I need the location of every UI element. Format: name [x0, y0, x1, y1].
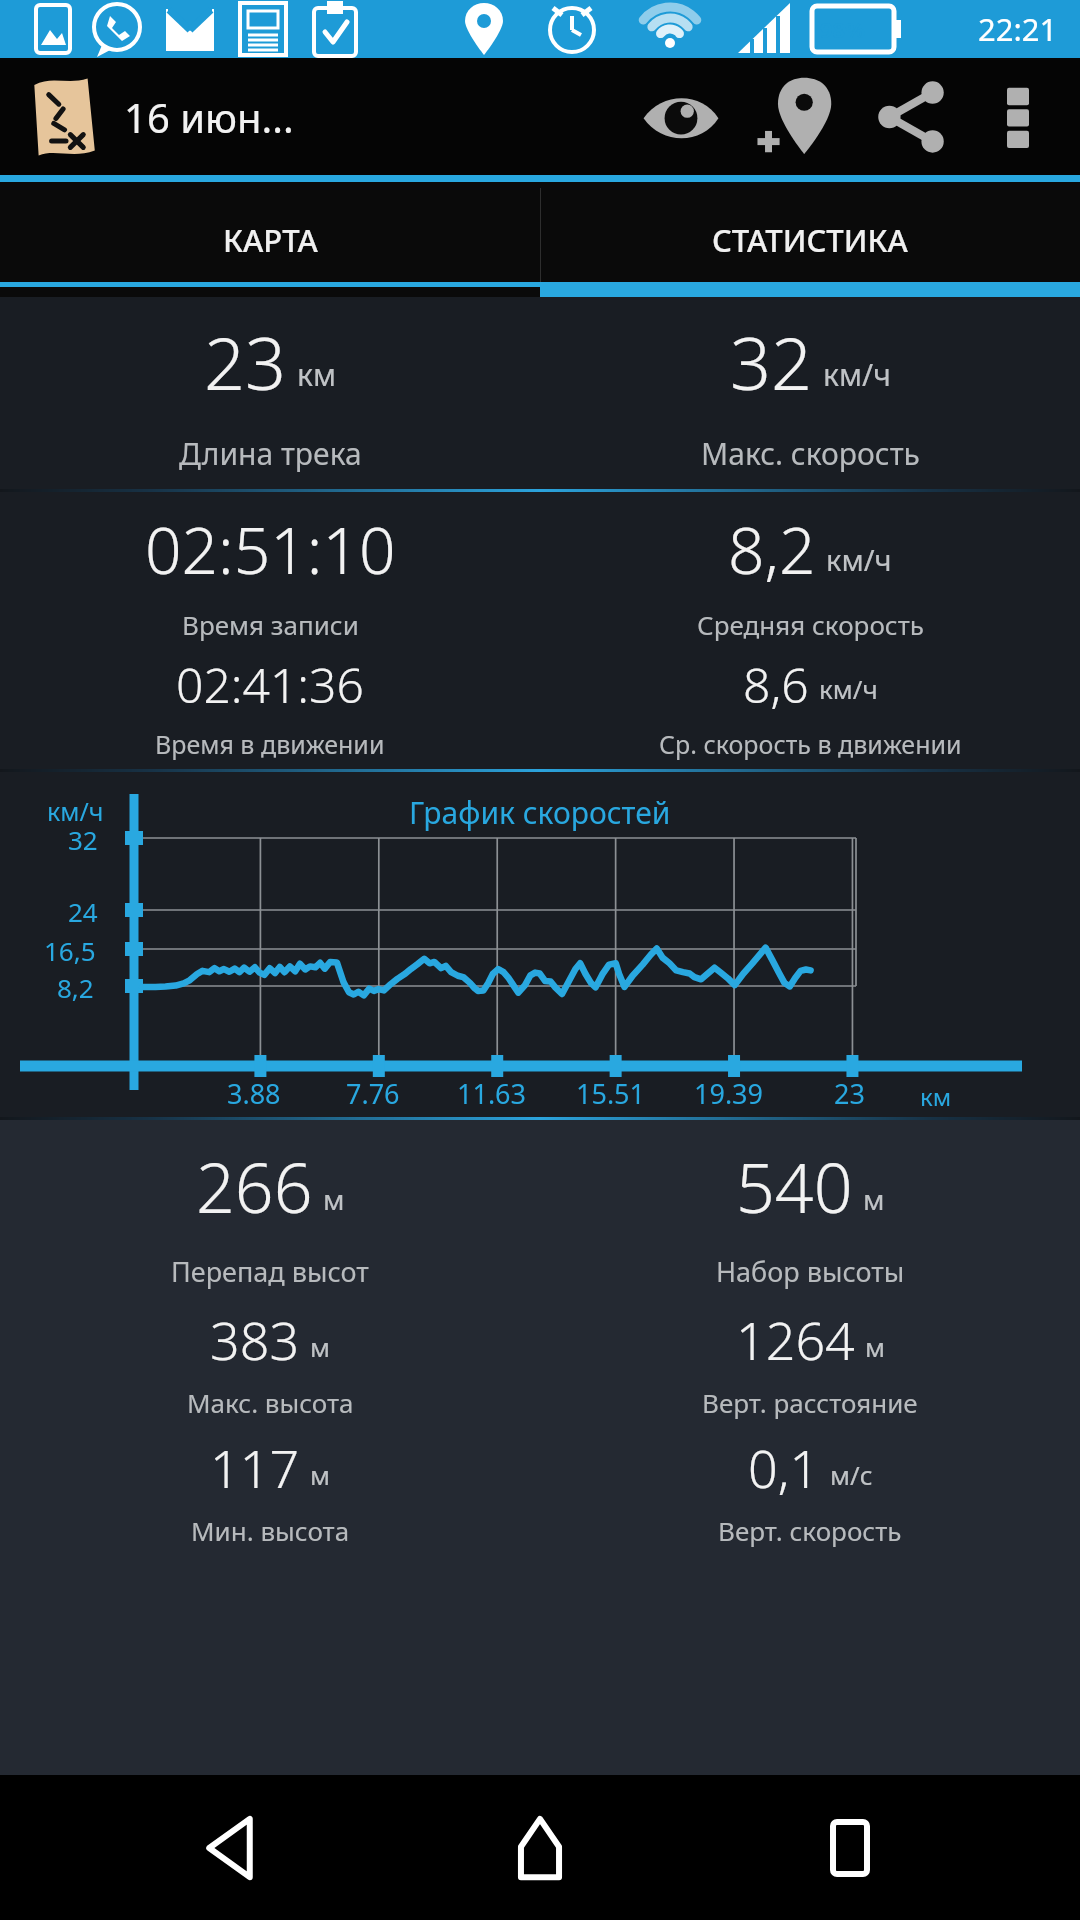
staticText: 16,5 [44, 933, 96, 968]
staticText: Макс. высота [187, 1385, 354, 1420]
button[interactable]: СТАТИСТИКА [540, 182, 1080, 297]
staticText: 23 [204, 313, 287, 411]
staticText: 16 июн... [124, 90, 294, 144]
staticText: км/ч [823, 354, 891, 395]
staticText: Мин. высота [191, 1513, 350, 1548]
staticText: 540 [736, 1140, 853, 1233]
staticText: км/ч [826, 540, 892, 579]
button[interactable]: Домой [460, 1775, 620, 1920]
staticText: м/с [830, 1457, 873, 1492]
staticText: 8,6 [743, 652, 809, 717]
staticText: 383 [210, 1304, 300, 1375]
staticText: м [863, 1180, 885, 1218]
button[interactable]: КАРТА [0, 182, 540, 297]
staticText: 7.76 [346, 1075, 400, 1112]
staticText: км [920, 1080, 952, 1113]
staticText: км/ч [819, 671, 878, 706]
button[interactable]: Назад [150, 1775, 310, 1920]
staticText: Время в движении [155, 727, 385, 761]
staticText: 19.39 [694, 1075, 764, 1112]
staticText: 15.51 [576, 1075, 646, 1112]
staticText: км [297, 354, 336, 395]
staticText: 1264 [736, 1304, 855, 1375]
staticText: 02:51:10 [145, 506, 396, 593]
staticText: Длина трека [179, 433, 362, 474]
button[interactable]: Поделиться [853, 58, 968, 175]
button[interactable]: Ещё [968, 58, 1068, 175]
staticText: 24 [68, 894, 98, 929]
staticText: 8,2 [57, 970, 94, 1005]
staticText: 32 [730, 313, 813, 411]
staticText: м [310, 1457, 330, 1492]
staticText: График скоростей [409, 792, 671, 833]
staticText: КАРТА [223, 219, 318, 261]
staticText: 22:21 [978, 8, 1058, 50]
staticText: м [865, 1329, 885, 1364]
staticText: 11.63 [457, 1075, 527, 1112]
staticText: Средняя скорость [697, 607, 924, 642]
staticText: Перепад высот [171, 1253, 369, 1290]
staticText: м [323, 1180, 345, 1218]
button[interactable]: Добавить точку [738, 58, 853, 175]
staticText: 02:41:36 [176, 652, 364, 717]
staticText: СТАТИСТИКА [712, 219, 908, 261]
staticText: 3.88 [227, 1075, 281, 1112]
staticText: 32 [68, 822, 98, 857]
staticText: Верт. расстояние [702, 1385, 918, 1420]
staticText: 23 [834, 1075, 865, 1112]
button[interactable]: Показать [623, 58, 738, 175]
staticText: 0,1 [748, 1432, 820, 1503]
button[interactable]: Обзор [770, 1775, 930, 1920]
staticText: 8,2 [728, 506, 816, 593]
staticText: Верт. скорость [718, 1513, 902, 1548]
staticText: Ср. скорость в движении [659, 727, 962, 761]
staticText: 117 [210, 1432, 300, 1503]
staticText: Время записи [182, 607, 359, 642]
staticText: км/ч [47, 794, 104, 828]
staticText: 266 [196, 1140, 313, 1233]
staticText: м [310, 1329, 330, 1364]
staticText: Макс. скорость [701, 433, 920, 474]
staticText: Набор высоты [716, 1253, 905, 1290]
